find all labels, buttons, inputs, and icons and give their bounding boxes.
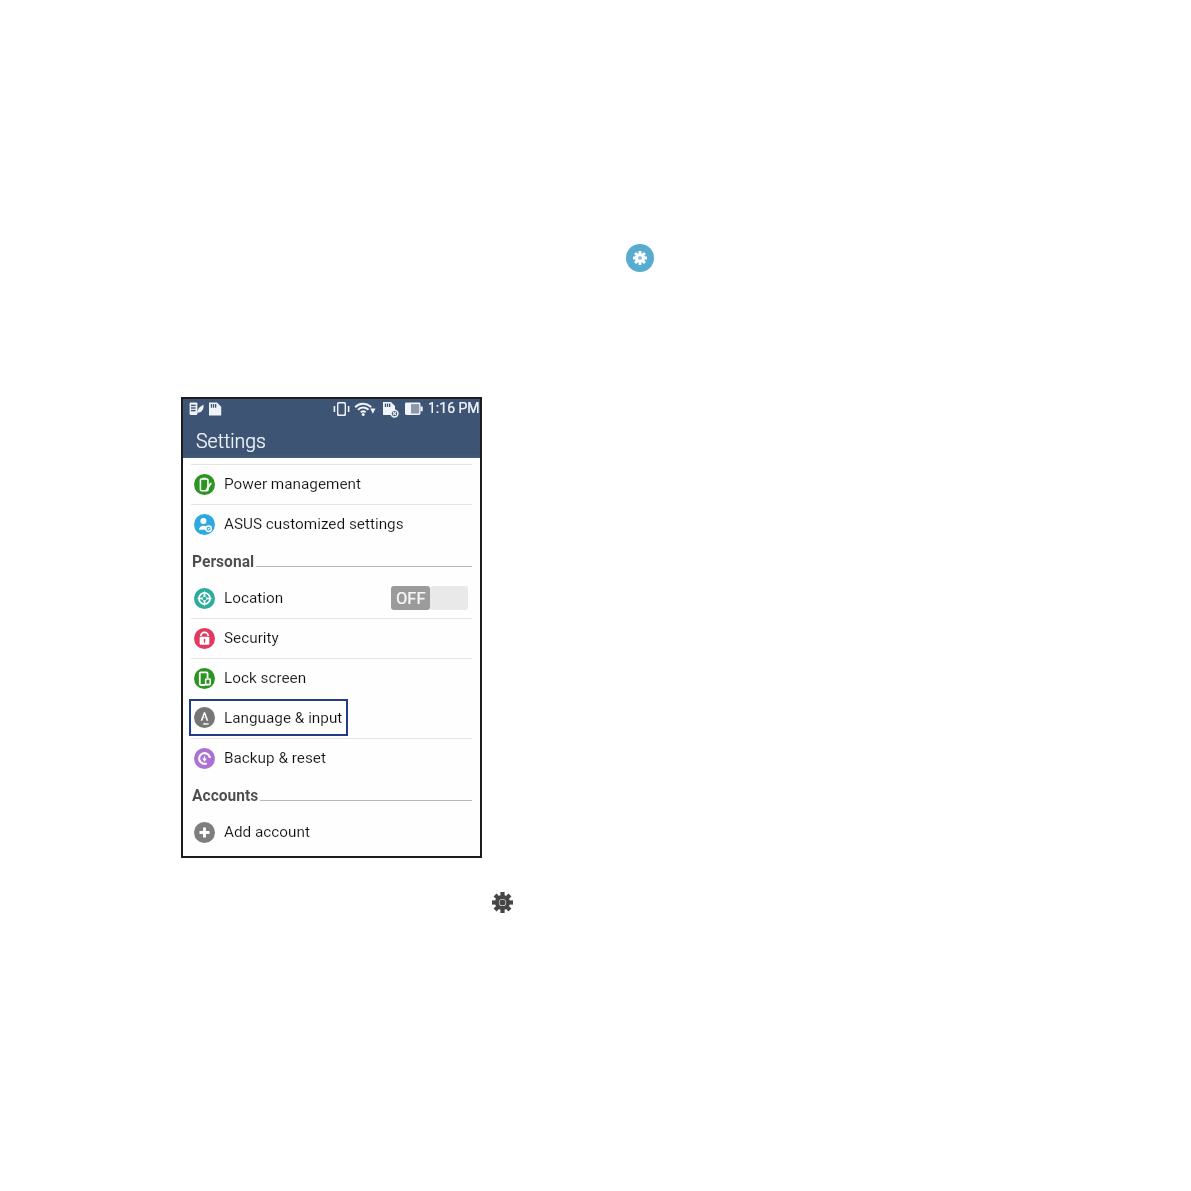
button[interactable]: Security <box>181 618 482 658</box>
staticText: Language & input <box>224 709 343 727</box>
button[interactable]: Settings <box>489 889 515 915</box>
staticText: ASUS customized settings <box>224 515 404 533</box>
staticText: Security <box>224 629 279 647</box>
staticText: Power management <box>224 475 362 493</box>
button[interactable]: Location <box>181 578 482 618</box>
button[interactable]: Power management <box>181 464 482 504</box>
button[interactable]: Location off <box>391 586 468 610</box>
staticText: Personal <box>192 553 255 571</box>
staticText: OFF <box>396 589 426 608</box>
staticText: Settings <box>196 430 266 453</box>
button[interactable]: Settings <box>626 244 654 272</box>
staticText: 1:16 PM <box>428 400 480 416</box>
button[interactable]: Add account <box>181 812 482 852</box>
button[interactable]: Language & input <box>181 698 482 738</box>
button[interactable]: Backup & reset <box>181 738 482 778</box>
staticText: Location <box>224 589 284 607</box>
button[interactable]: ASUS customized settings <box>181 504 482 544</box>
staticText: Accounts <box>192 787 259 805</box>
staticText: Add account <box>224 823 310 841</box>
button[interactable]: Lock screen <box>181 658 482 698</box>
staticText: Lock screen <box>224 669 307 687</box>
staticText: Backup & reset <box>224 749 326 767</box>
